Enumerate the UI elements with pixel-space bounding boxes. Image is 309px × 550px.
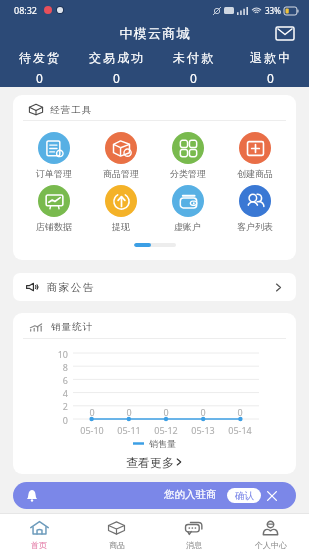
- staticText: 0: [82, 406, 102, 418]
- button[interactable]: 未付款: [155, 46, 232, 87]
- staticText: 0: [190, 70, 197, 86]
- staticText: 05-12: [147, 424, 185, 436]
- staticText: 8: [43, 361, 68, 373]
- staticText: 0: [113, 70, 120, 86]
- staticText: 查看更多: [126, 455, 174, 470]
- button[interactable]: 客户列表: [221, 185, 288, 232]
- button[interactable]: 订单管理: [21, 132, 87, 179]
- button[interactable]: Messages: [273, 21, 297, 45]
- staticText: 05-13: [184, 424, 222, 436]
- staticText: 待发货: [19, 50, 62, 65]
- button[interactable]: 虚账户: [154, 185, 221, 232]
- staticText: 虚账户: [174, 221, 201, 232]
- staticText: 创建商品: [237, 168, 273, 179]
- button[interactable]: 商品管理: [87, 132, 154, 179]
- staticText: 确认: [235, 490, 254, 502]
- staticText: 商家公告: [46, 281, 94, 294]
- staticText: 销量统计: [51, 321, 94, 333]
- button[interactable]: 分类管理: [154, 132, 221, 179]
- staticText: 您的入驻商家信息: [164, 488, 221, 501]
- staticText: 0: [119, 406, 139, 418]
- staticText: 0: [36, 70, 43, 86]
- staticText: 首页: [31, 540, 47, 550]
- staticText: 33%: [265, 5, 281, 16]
- staticText: 个人中心: [255, 540, 287, 550]
- button[interactable]: 创建商品: [221, 132, 288, 179]
- staticText: 4: [43, 387, 68, 399]
- staticText: 提现: [112, 221, 130, 232]
- staticText: 10: [43, 348, 68, 360]
- button[interactable]: 商品: [78, 514, 155, 550]
- staticText: 08:32: [14, 4, 38, 16]
- button[interactable]: 您的入驻商家信息: [13, 482, 296, 509]
- staticText: 消息: [186, 540, 202, 550]
- button[interactable]: 个人中心: [232, 514, 309, 550]
- button[interactable]: Close: [264, 488, 280, 504]
- staticText: 0: [193, 406, 213, 418]
- button[interactable]: 消息: [155, 514, 232, 550]
- staticText: 销售量: [149, 438, 176, 449]
- button[interactable]: 提现: [87, 185, 154, 232]
- staticText: 交易成功: [89, 50, 146, 65]
- button[interactable]: 店铺数据: [21, 185, 87, 232]
- staticText: 05-11: [110, 424, 148, 436]
- staticText: 店铺数据: [36, 221, 72, 232]
- button[interactable]: 待发货: [0, 46, 78, 87]
- staticText: 未付款: [173, 50, 216, 65]
- staticText: 6: [43, 374, 68, 386]
- staticText: 商品: [109, 540, 125, 550]
- button[interactable]: 首页: [0, 514, 78, 550]
- staticText: 05-10: [73, 424, 111, 436]
- staticText: 商品管理: [103, 168, 139, 179]
- button[interactable]: 商家公告: [13, 273, 296, 301]
- staticText: 订单管理: [36, 168, 72, 179]
- button[interactable]: 退款中: [232, 46, 309, 87]
- staticText: 经营工具: [50, 104, 93, 116]
- staticText: 2: [43, 400, 68, 412]
- button[interactable]: 查看更多: [13, 452, 296, 472]
- staticText: 05-14: [221, 424, 259, 436]
- staticText: 0: [156, 406, 176, 418]
- staticText: 分类管理: [170, 168, 206, 179]
- staticText: 中模云商城: [119, 25, 190, 41]
- button[interactable]: 交易成功: [78, 46, 155, 87]
- staticText: 0: [230, 406, 250, 418]
- staticText: 0: [267, 70, 274, 86]
- button[interactable]: 确认: [227, 488, 261, 503]
- staticText: 客户列表: [237, 221, 273, 232]
- staticText: 退款中: [250, 50, 293, 65]
- staticText: 0: [43, 414, 68, 426]
